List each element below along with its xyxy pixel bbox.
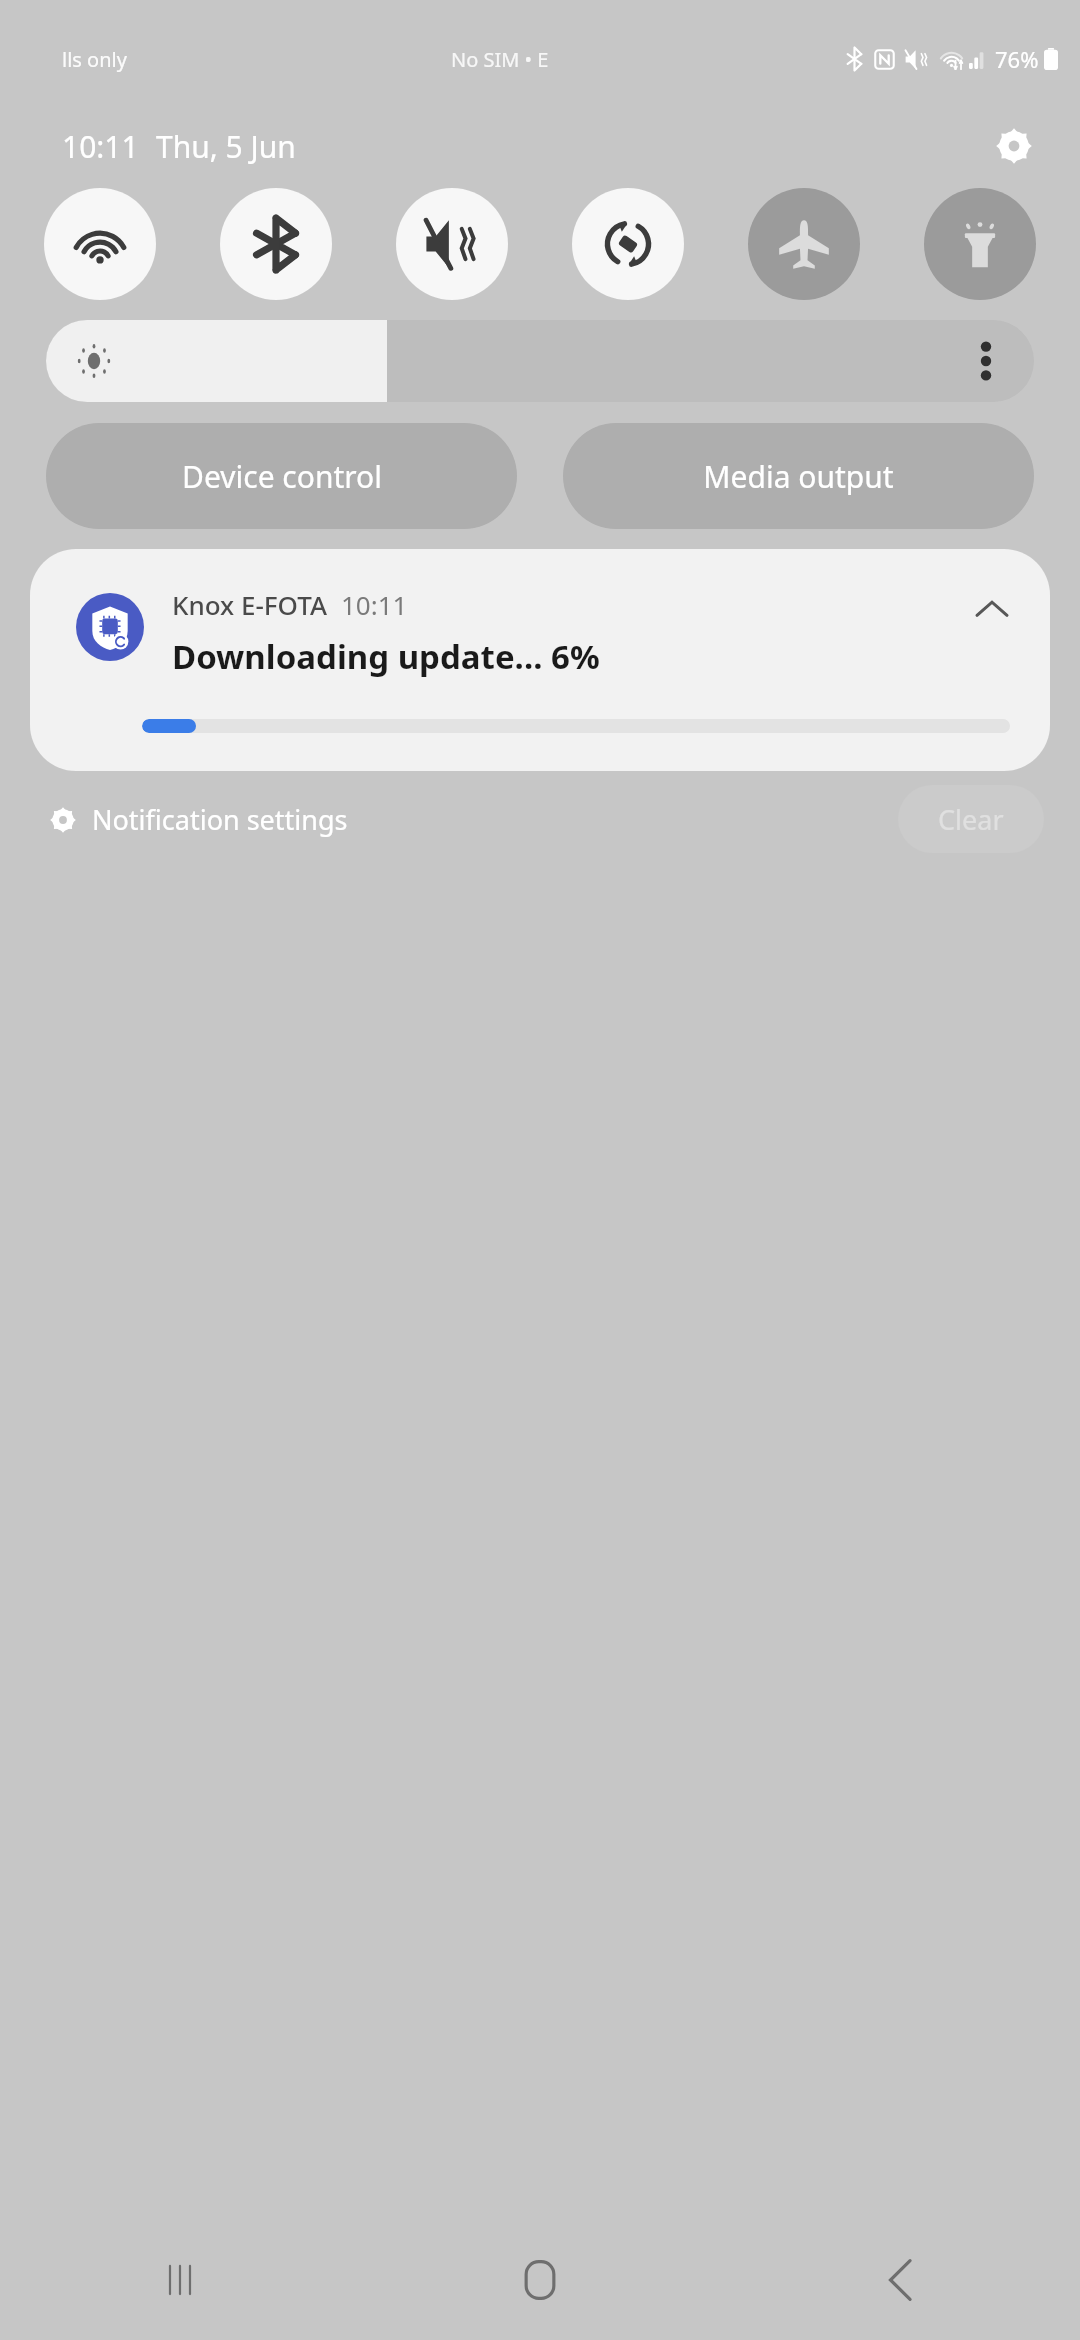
button[interactable]: Media output (563, 423, 1034, 529)
staticText: Device control (182, 456, 382, 497)
button[interactable]: Device control (46, 423, 517, 529)
button[interactable]: More options (956, 331, 1016, 391)
staticText: 10:11 (341, 587, 408, 622)
button[interactable]: Home (360, 2220, 720, 2340)
staticText: 10:11 (62, 126, 139, 167)
button[interactable]: Flashlight (924, 188, 1036, 300)
button[interactable]: Sound mode (396, 188, 508, 300)
button[interactable]: Recents (0, 2220, 360, 2340)
staticText: No SIM • E (451, 46, 549, 73)
staticText: Downloading update... 6% (172, 634, 600, 679)
button[interactable]: Bluetooth (220, 188, 332, 300)
button[interactable]: Knox E-FOTA (30, 549, 1050, 771)
button[interactable]: Notification settings (46, 793, 352, 846)
button[interactable]: Back (720, 2220, 1080, 2340)
staticText: Notification settings (92, 801, 348, 838)
button[interactable]: Settings (988, 120, 1040, 172)
staticText: Thu, 5 Jun (156, 126, 296, 167)
staticText: Knox E-FOTA (172, 587, 327, 622)
button[interactable]: Airplane mode (748, 188, 860, 300)
button[interactable]: Brightness (46, 320, 1034, 402)
staticText: 76% (995, 44, 1039, 74)
button[interactable]: Clear (898, 785, 1044, 853)
button[interactable]: Wi-Fi (44, 188, 156, 300)
button[interactable]: Auto rotate (572, 188, 684, 300)
button[interactable]: Collapse (962, 579, 1022, 639)
staticText: Media output (703, 456, 894, 497)
staticText: lls only (62, 46, 127, 73)
staticText: Clear (938, 801, 1004, 838)
